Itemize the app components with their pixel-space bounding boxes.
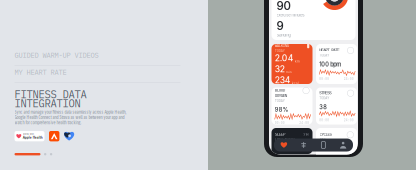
button[interactable]: Google Health Connect xyxy=(64,131,74,141)
staticText: STRESS xyxy=(319,90,331,95)
staticText: BLOOD OXYGEN xyxy=(275,87,287,98)
staticText: INTEGRATION xyxy=(14,96,80,110)
staticText: 100 bpm xyxy=(319,61,341,68)
staticText: FITNESS DATA xyxy=(14,87,86,101)
button[interactable]: Workouts xyxy=(294,141,314,148)
staticText: HEART RATE xyxy=(319,47,339,53)
staticText: km xyxy=(295,59,300,63)
staticText: Sync and manage your fitness data seamle… xyxy=(14,109,126,125)
staticText: Apple Health xyxy=(23,136,43,139)
staticText: TODAY xyxy=(319,53,329,57)
staticText: CYCLES xyxy=(319,131,331,137)
button[interactable]: Works with xyxy=(14,131,44,141)
staticText: LAST NIGHT xyxy=(275,137,295,142)
staticText: 32 xyxy=(275,64,285,74)
staticText: 38 xyxy=(319,104,327,110)
staticText: kcal xyxy=(292,81,299,85)
staticText: 98% xyxy=(275,106,289,113)
staticText: Standing xyxy=(276,33,290,37)
staticText: min xyxy=(286,70,292,74)
staticText: TODAY xyxy=(275,98,285,103)
button[interactable]: MY HEART RATE xyxy=(14,67,180,82)
staticText: MAY xyxy=(319,137,325,142)
button[interactable]: Activity xyxy=(274,142,294,148)
staticText: SLEEP xyxy=(275,131,285,137)
staticText: 7H xyxy=(303,131,309,137)
staticText: 9 xyxy=(276,19,283,33)
staticText: 00:00 xyxy=(319,118,329,122)
button[interactable]: Strava xyxy=(49,131,59,141)
staticText: 90 xyxy=(276,0,290,13)
staticText: WALKING xyxy=(275,43,289,48)
staticText: Works with xyxy=(23,133,34,135)
staticText: GUIDED WARM-UP VIDEOS xyxy=(14,50,98,60)
button[interactable]: Devices xyxy=(313,141,333,148)
staticText: 00:00 xyxy=(275,121,285,125)
staticText: MY HEART RATE xyxy=(14,67,66,77)
staticText: 24:00 xyxy=(344,118,354,122)
staticText: 24:00 xyxy=(344,77,354,81)
staticText: 00:00 xyxy=(319,77,329,81)
staticText: TODAY xyxy=(319,96,329,100)
button[interactable]: Profile xyxy=(333,141,353,148)
staticText: Exercise minutes xyxy=(276,13,304,17)
staticText: 2.04 xyxy=(275,53,294,63)
staticText: 24:00 xyxy=(299,121,309,125)
staticText: 234 xyxy=(275,75,291,85)
staticText: TODAY xyxy=(275,48,285,53)
button[interactable]: GUIDED WARM-UP VIDEOS xyxy=(14,50,180,65)
